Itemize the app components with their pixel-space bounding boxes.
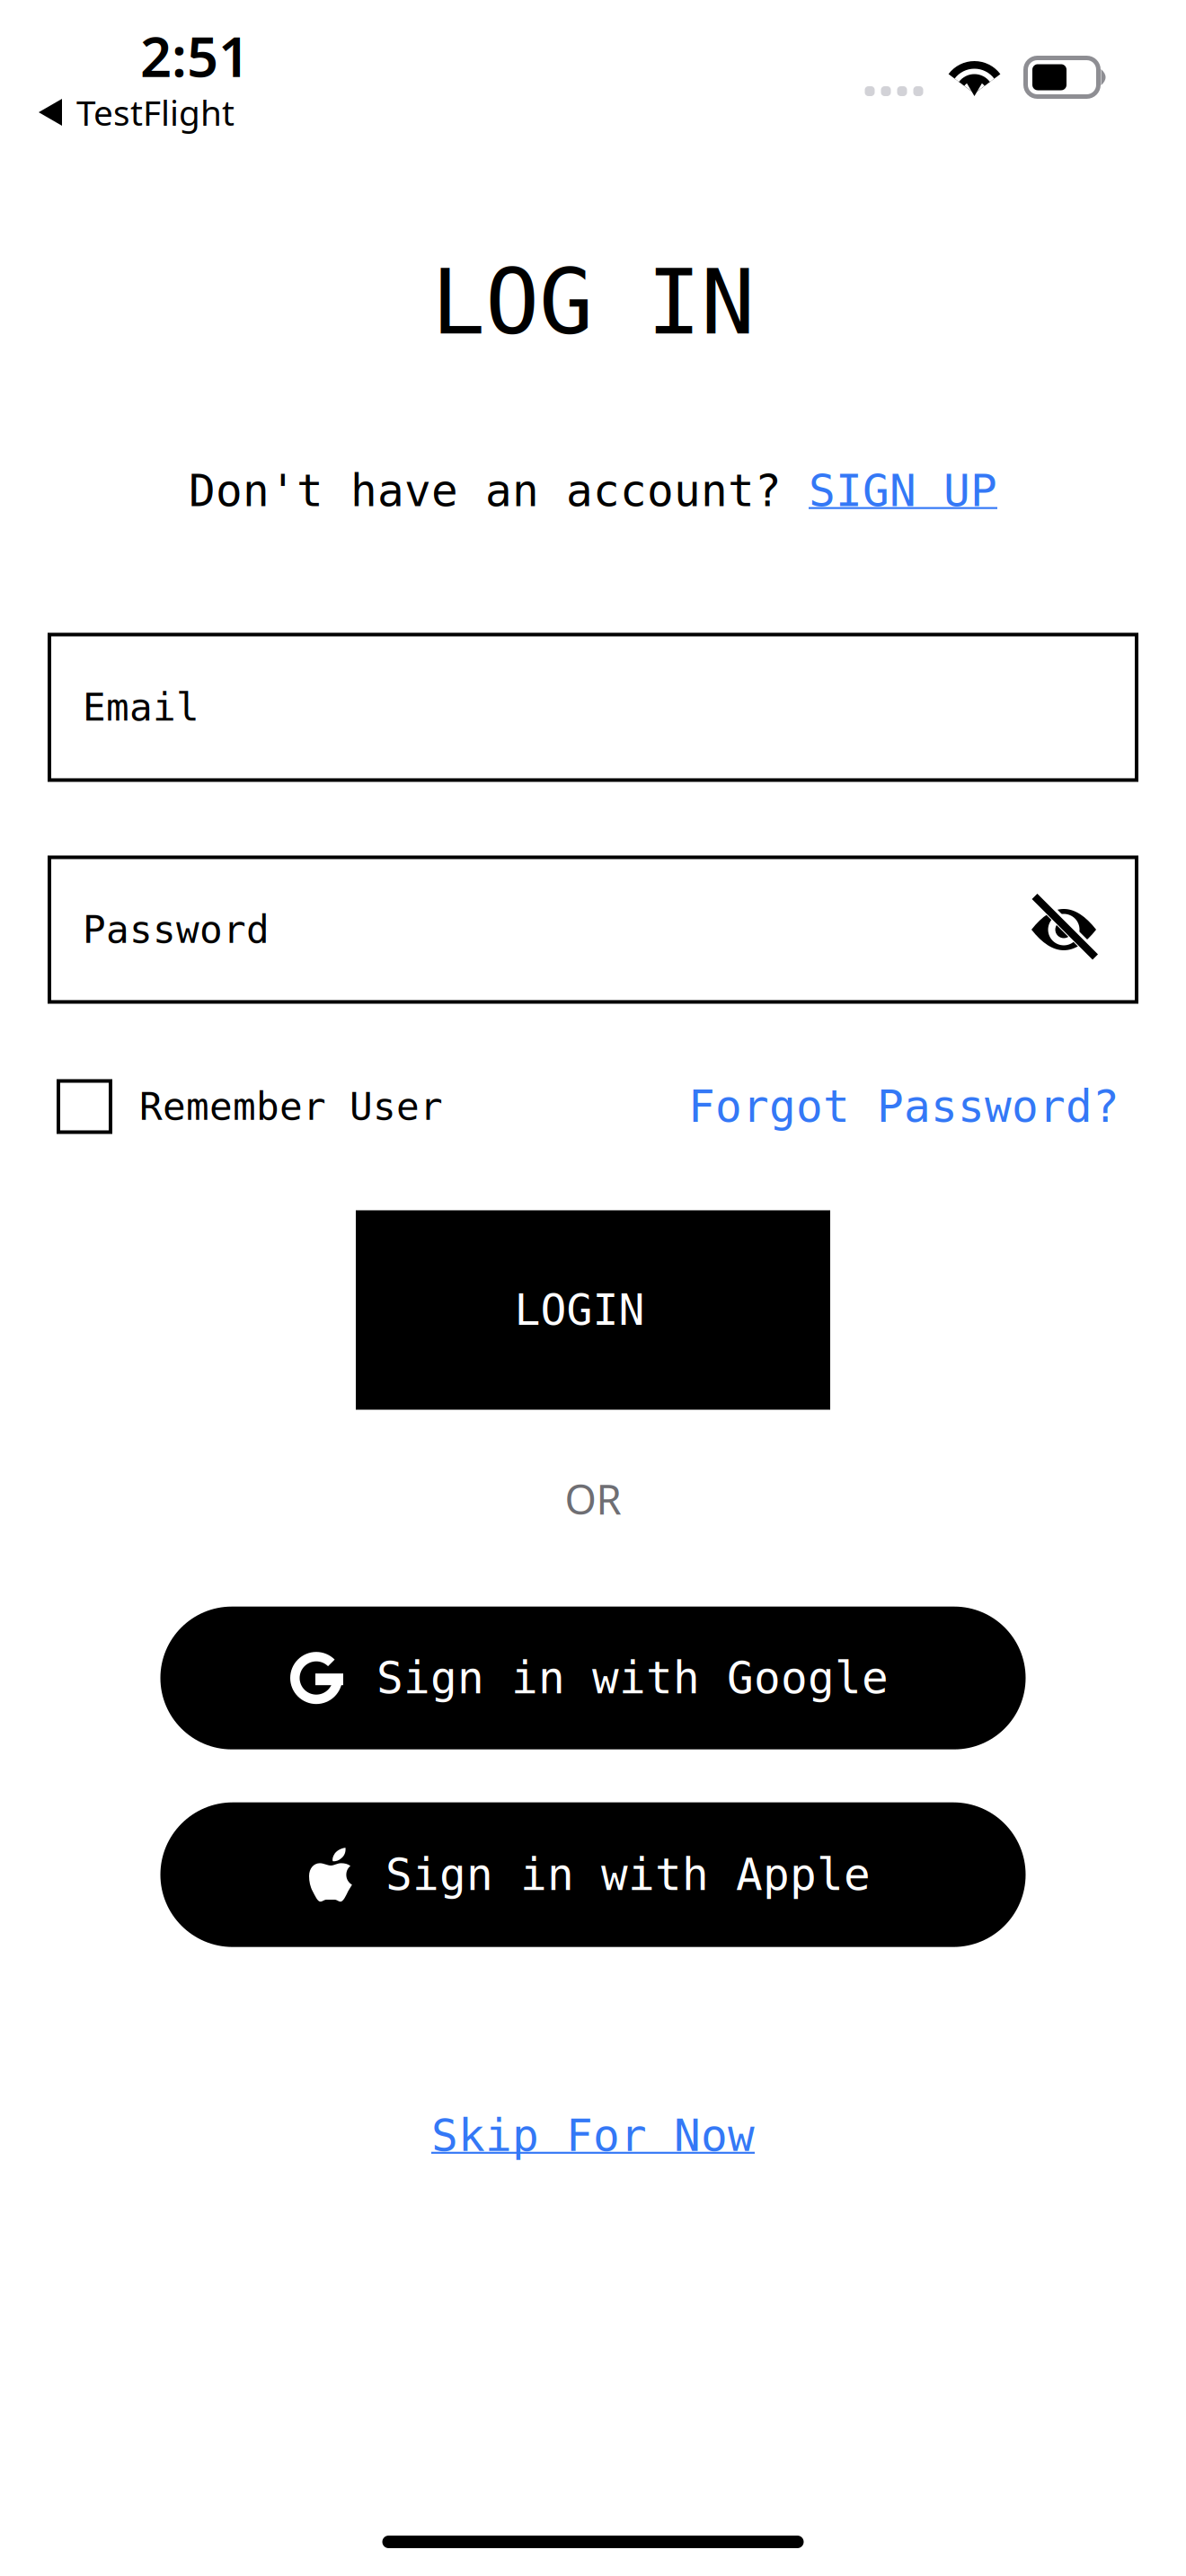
staticText: Sign in with Apple bbox=[385, 1850, 871, 1900]
staticText: Sign in with Google bbox=[376, 1653, 889, 1703]
staticText: Don't have an account? bbox=[189, 466, 809, 516]
staticText: Email bbox=[83, 686, 199, 729]
button[interactable]: SIGN UP bbox=[809, 466, 997, 516]
staticText: 2:51 bbox=[140, 19, 250, 92]
staticText: LOG IN bbox=[431, 251, 755, 353]
button[interactable]: Show password bbox=[1035, 894, 1103, 966]
staticText: SIGN UP bbox=[809, 466, 997, 516]
staticText: Remember User bbox=[139, 1085, 443, 1128]
staticText: TestFlight bbox=[76, 89, 235, 135]
staticText: Password bbox=[83, 908, 270, 951]
staticText: LOGIN bbox=[514, 1285, 645, 1334]
button[interactable]: Skip For Now bbox=[431, 2110, 755, 2161]
staticText: OR bbox=[565, 1472, 621, 1526]
button[interactable]: TestFlight bbox=[30, 82, 243, 142]
button[interactable]: Sign in with Google bbox=[160, 1607, 1026, 1749]
staticText: Forgot Password? bbox=[688, 1081, 1120, 1132]
button[interactable]: Forgot Password? bbox=[688, 1081, 1120, 1132]
button[interactable]: LOGIN bbox=[356, 1210, 830, 1410]
button[interactable]: Sign in with Apple bbox=[160, 1802, 1026, 1947]
button[interactable]: Remember User bbox=[58, 1081, 443, 1132]
staticText: Skip For Now bbox=[431, 2110, 755, 2161]
